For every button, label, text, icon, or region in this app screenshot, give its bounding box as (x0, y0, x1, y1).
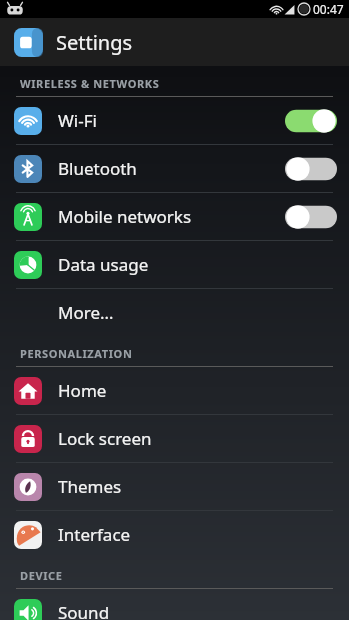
button[interactable]: More… (0, 289, 349, 336)
staticText: WIRELESS & NETWORKS (20, 76, 160, 91)
staticText: Lock screen (58, 427, 152, 450)
button[interactable]: Themes (0, 463, 349, 510)
button[interactable]: Bluetooth (0, 145, 349, 192)
button[interactable]: Toggle off (285, 156, 337, 182)
staticText: Mobile networks (58, 205, 192, 228)
button[interactable]: Mobile networks (0, 193, 349, 240)
staticText: Data usage (58, 253, 149, 276)
button[interactable]: Data usage (0, 241, 349, 288)
staticText: Bluetooth (58, 157, 137, 180)
button[interactable]: Wi-Fi (0, 97, 349, 144)
button[interactable]: Toggle off (285, 204, 337, 230)
button[interactable]: Toggle on (285, 108, 337, 134)
staticText: Wi-Fi (58, 109, 97, 132)
button[interactable]: Interface (0, 511, 349, 558)
staticText: Sound (58, 601, 110, 620)
staticText: PERSONALIZATION (20, 346, 133, 361)
staticText: Interface (58, 523, 131, 546)
button[interactable]: Sound (0, 589, 349, 620)
staticText: DEVICE (20, 568, 63, 583)
button[interactable]: Home (0, 367, 349, 414)
staticText: Settings (56, 29, 133, 56)
staticText: 00:47 (313, 1, 344, 17)
button[interactable]: Lock screen (0, 415, 349, 462)
staticText: More… (58, 301, 114, 324)
button[interactable]: Settings (0, 18, 349, 66)
staticText: Home (58, 379, 107, 402)
staticText: Themes (58, 475, 122, 498)
